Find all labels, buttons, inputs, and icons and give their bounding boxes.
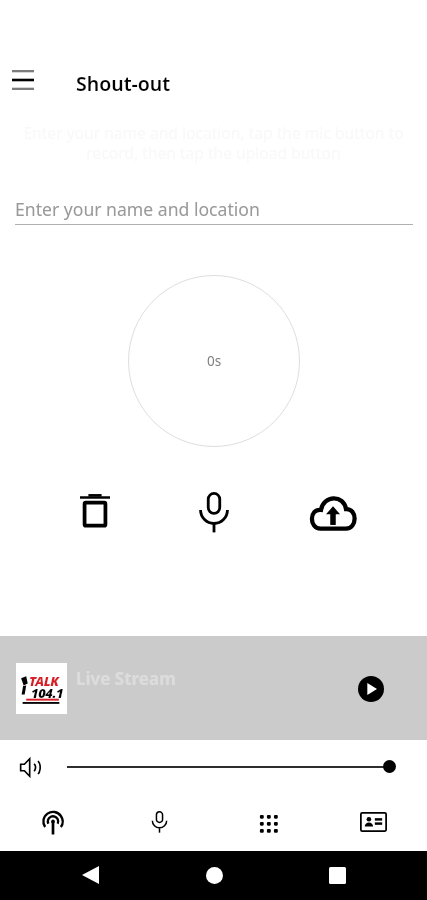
button[interactable]: Apps [213, 796, 320, 851]
staticText: TALK [29, 672, 59, 690]
button[interactable]: Broadcast [0, 796, 106, 851]
button[interactable]: Back [66, 851, 114, 899]
button[interactable]: TALK [0, 636, 427, 740]
button[interactable]: Contact card [320, 796, 427, 851]
staticText: Shout-out [76, 70, 171, 97]
button[interactable]: Upload recording [308, 487, 358, 537]
staticText: 104.1 [31, 684, 64, 702]
staticText: Live Stream [76, 667, 176, 690]
button[interactable]: Recent apps [313, 851, 361, 899]
staticText: Enter your name and location [15, 197, 260, 221]
button[interactable]: Home [190, 851, 238, 899]
button[interactable]: Microphone [106, 796, 213, 851]
button[interactable]: Delete recording [70, 484, 120, 534]
button[interactable]: Play live stream [358, 676, 384, 702]
button[interactable]: Recording timer [128, 275, 300, 447]
button[interactable]: Open navigation menu [3, 60, 43, 100]
staticText: 0s [207, 352, 222, 370]
button[interactable]: Record audio [189, 487, 239, 537]
